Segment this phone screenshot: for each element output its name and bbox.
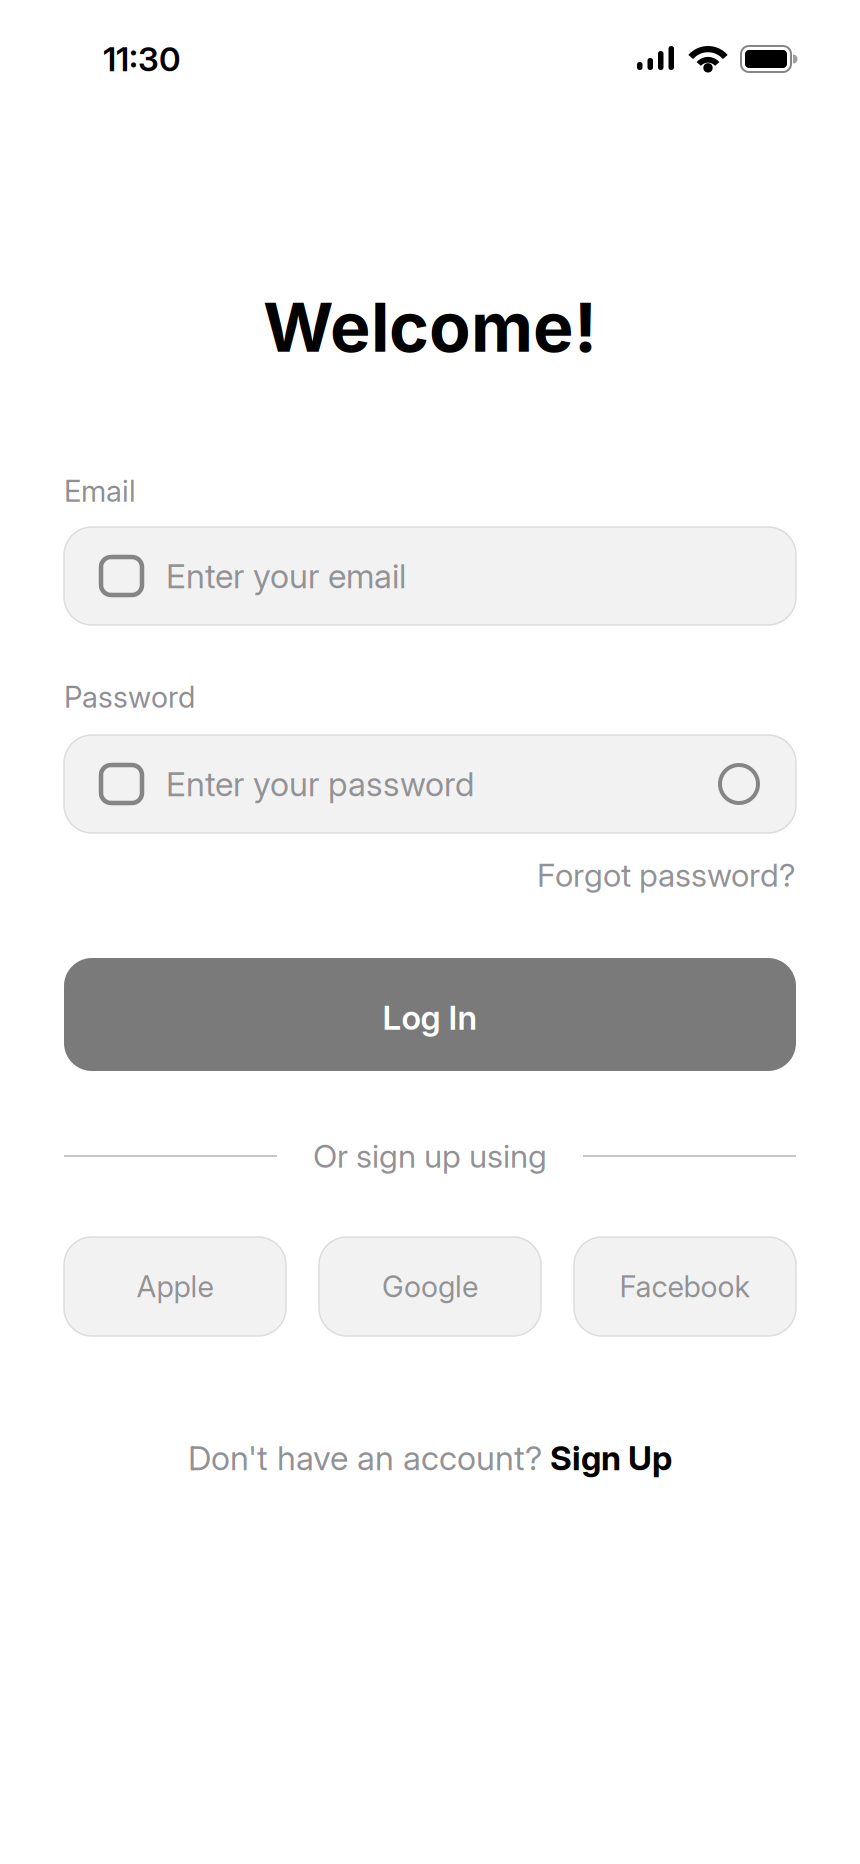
staticText: Facebook [619,1269,750,1304]
button[interactable]: Show password [720,765,758,803]
button[interactable]: Apple [64,1237,286,1336]
staticText: Password [64,680,195,714]
button[interactable]: Enter your password [64,735,796,833]
staticText: Google [382,1269,478,1304]
staticText: Or sign up using [313,1137,547,1175]
staticText: Email [64,474,136,508]
staticText: Forgot password? [537,856,796,894]
button[interactable]: Sign Up [550,1438,672,1478]
staticText: Log In [382,998,477,1037]
staticText: Sign Up [550,1438,672,1478]
button[interactable]: Google [319,1237,541,1336]
button[interactable]: Forgot password? [537,856,796,894]
staticText: Welcome! [263,287,597,367]
button[interactable]: Facebook [574,1237,796,1336]
staticText: Enter your password [166,764,474,804]
button[interactable]: Enter your email [64,527,796,625]
staticText: 11:30 [103,39,181,79]
staticText: Apple [136,1269,213,1304]
staticText: Don't have an account? [188,1438,542,1478]
staticText: Enter your email [166,556,406,596]
button[interactable]: Log In [64,958,796,1071]
